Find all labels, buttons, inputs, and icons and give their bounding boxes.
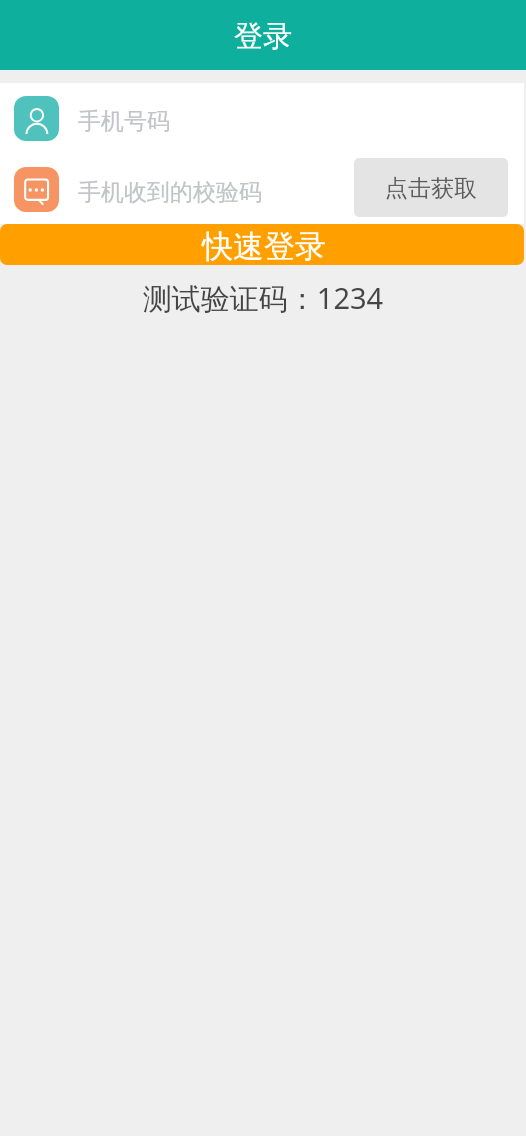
- staticText: 点击获取: [385, 174, 477, 203]
- other: SMS verification code: [14, 167, 59, 212]
- button[interactable]: Phone number: [0, 83, 524, 154]
- button[interactable]: 手机收到的校验码: [59, 154, 354, 224]
- other: Phone number: [14, 96, 59, 141]
- staticText: 测试验证码：1234: [0, 278, 526, 318]
- button[interactable]: 快速登录: [0, 224, 524, 265]
- button[interactable]: 点击获取: [354, 158, 508, 217]
- staticText: 手机号码: [78, 107, 170, 136]
- staticText: 登录: [234, 18, 292, 55]
- staticText: 手机收到的校验码: [78, 178, 262, 207]
- staticText: 快速登录: [202, 227, 326, 265]
